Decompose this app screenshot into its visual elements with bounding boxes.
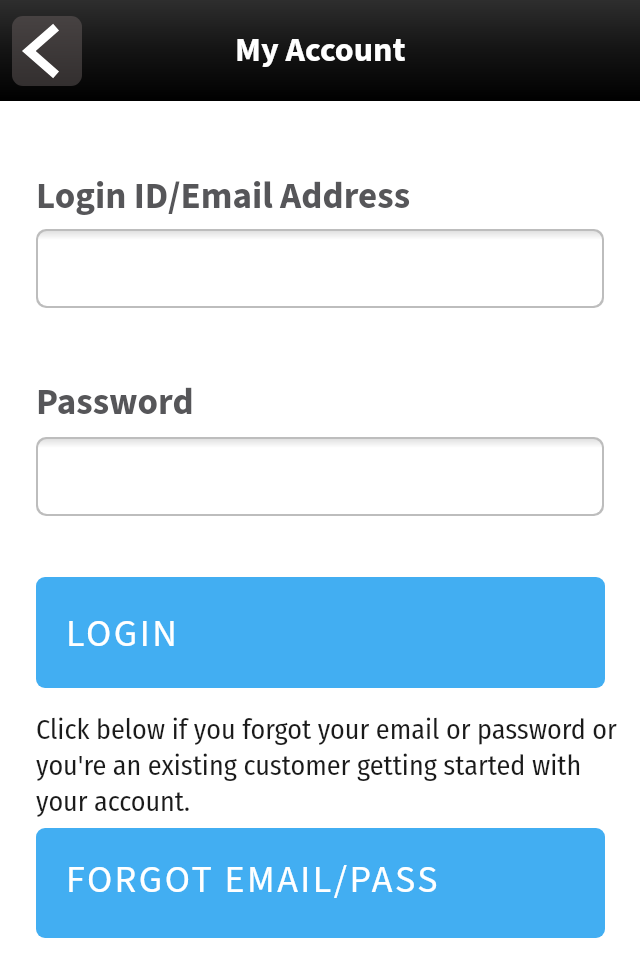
staticText: Login ID/Email Address [36,170,411,223]
staticText: Password [36,376,194,429]
button[interactable] [12,16,82,86]
staticText: My Account [235,26,406,74]
button[interactable] [38,231,602,306]
staticText: LOGIN [66,607,180,661]
button[interactable] [38,439,602,514]
button[interactable]: LOGIN [36,577,605,688]
staticText: FORGOT EMAIL/PASS [66,853,440,907]
button[interactable]: FORGOT EMAIL/PASS [36,828,605,938]
staticText: Click below if you forgot your email or … [36,713,626,818]
